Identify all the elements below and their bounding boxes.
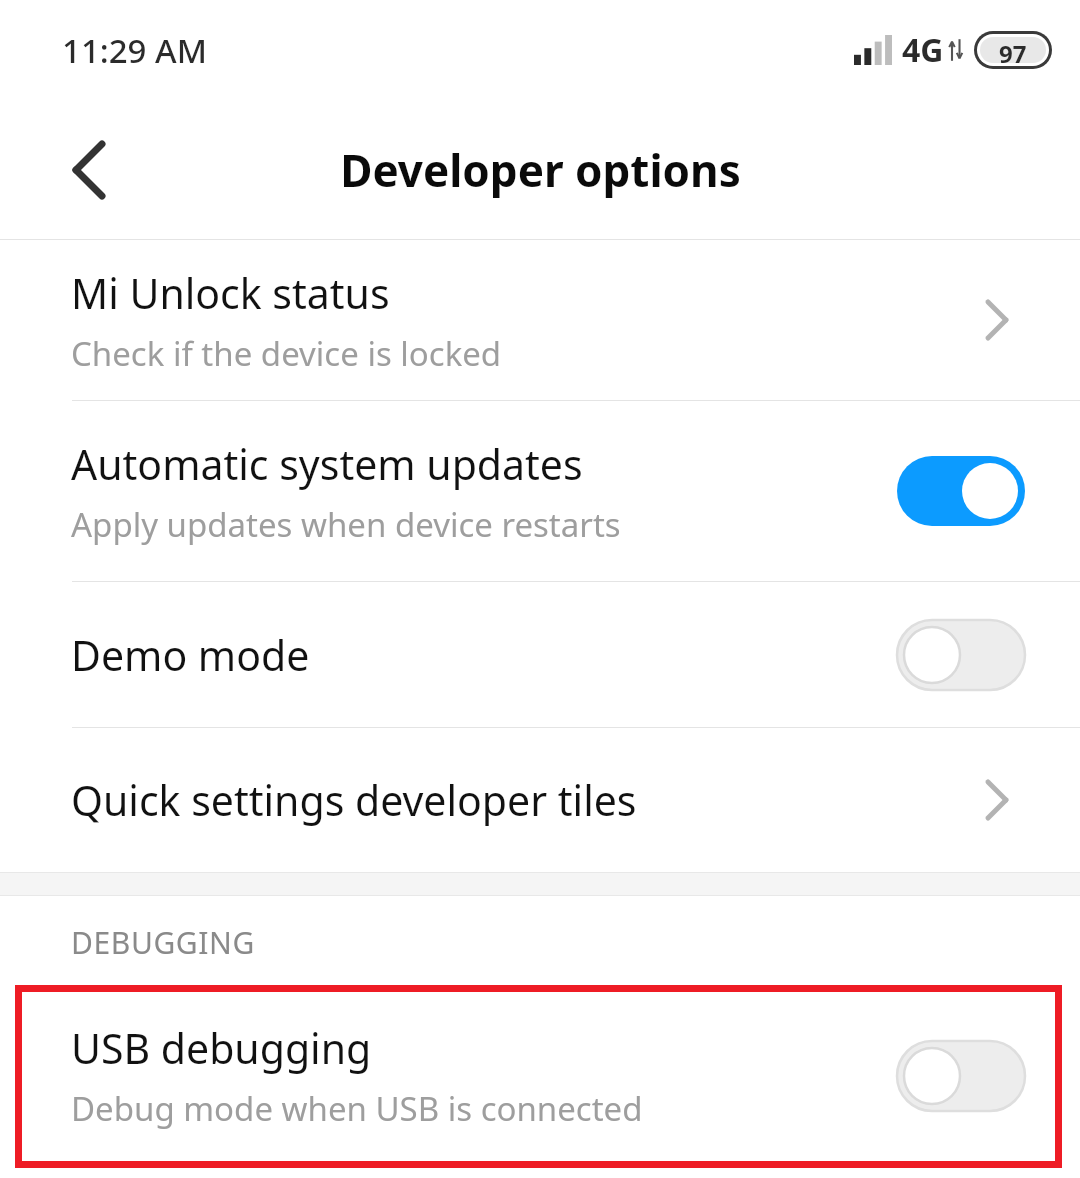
button[interactable]: Automatic system updates [0,401,1080,581]
staticText: Apply updates when device restarts [71,502,621,547]
staticText: Mi Unlock status [71,265,390,321]
button[interactable]: Toggle on [897,456,1025,526]
button[interactable]: Toggle off [897,620,1025,690]
button[interactable]: Demo mode [0,582,1080,727]
staticText: USB debugging [71,1020,372,1076]
staticText: Debug mode when USB is connected [71,1086,643,1131]
staticText: 11:29 AM [62,28,207,73]
staticText: Quick settings developer tiles [71,772,637,828]
staticText: Demo mode [71,627,310,683]
staticText: Developer options [340,140,741,200]
button[interactable]: Mi Unlock status [0,240,1080,400]
staticText: 4G [902,28,944,72]
staticText: Check if the device is locked [71,331,502,376]
button[interactable]: Back [46,127,132,213]
button[interactable]: Toggle off [897,1041,1025,1111]
staticText: DEBUGGING [71,922,255,963]
staticText: Automatic system updates [71,436,583,492]
staticText: 97 [999,37,1027,63]
button[interactable]: Quick settings developer tiles [0,728,1080,872]
button[interactable]: USB debugging [0,988,1080,1163]
